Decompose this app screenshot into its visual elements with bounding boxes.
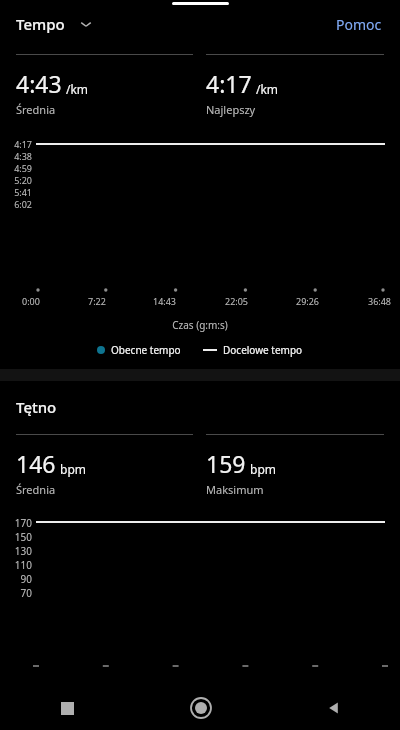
staticText: 0:00: [22, 295, 40, 307]
staticText: 36:48: [368, 295, 392, 307]
staticText: 90: [6, 572, 32, 586]
staticText: bpm: [60, 461, 86, 477]
staticText: Średnia: [16, 482, 56, 497]
staticText: 150: [6, 530, 32, 544]
other: Change metric: [79, 17, 93, 31]
staticText: 70: [6, 586, 32, 600]
staticText: Średnia: [16, 102, 56, 117]
button[interactable]: Recent apps: [0, 686, 134, 730]
staticText: 130: [6, 544, 32, 558]
staticText: 7:22: [88, 295, 106, 307]
staticText: 159: [206, 448, 246, 479]
button[interactable]: 4:43: [16, 54, 193, 117]
staticText: Najlepszy: [206, 102, 256, 117]
button[interactable]: Home: [134, 686, 267, 730]
staticText: Docelowe tempo: [223, 343, 303, 357]
staticText: Tempo: [16, 14, 65, 34]
staticText: Obecne tempo: [111, 343, 181, 357]
staticText: 29:26: [296, 295, 320, 307]
staticText: 22:05: [225, 295, 249, 307]
staticText: 5:41: [6, 186, 32, 198]
staticText: 4:43: [16, 68, 62, 99]
staticText: 4:38: [6, 150, 32, 162]
staticText: /km: [66, 81, 89, 97]
staticText: 5:20: [6, 174, 32, 186]
staticText: 110: [6, 558, 32, 572]
staticText: bpm: [250, 461, 276, 477]
button[interactable]: 4:17: [206, 54, 384, 117]
staticText: 170: [6, 516, 32, 530]
staticText: 146: [16, 448, 56, 479]
staticText: 4:17: [206, 68, 252, 99]
button[interactable]: Pomoc: [332, 11, 386, 38]
staticText: Pomoc: [336, 15, 382, 34]
staticText: 6:02: [6, 198, 32, 210]
button[interactable]: 146: [16, 434, 193, 497]
staticText: /km: [256, 81, 279, 97]
staticText: 4:59: [6, 162, 32, 174]
staticText: Czas (g:m:s): [0, 318, 400, 332]
button[interactable]: Back: [267, 686, 400, 730]
staticText: Maksimum: [206, 482, 264, 497]
staticText: 4:17: [6, 138, 32, 150]
staticText: 14:43: [153, 295, 177, 307]
button[interactable]: Tempo: [16, 14, 93, 34]
button[interactable]: 159: [206, 434, 384, 497]
staticText: Tętno: [16, 397, 57, 417]
